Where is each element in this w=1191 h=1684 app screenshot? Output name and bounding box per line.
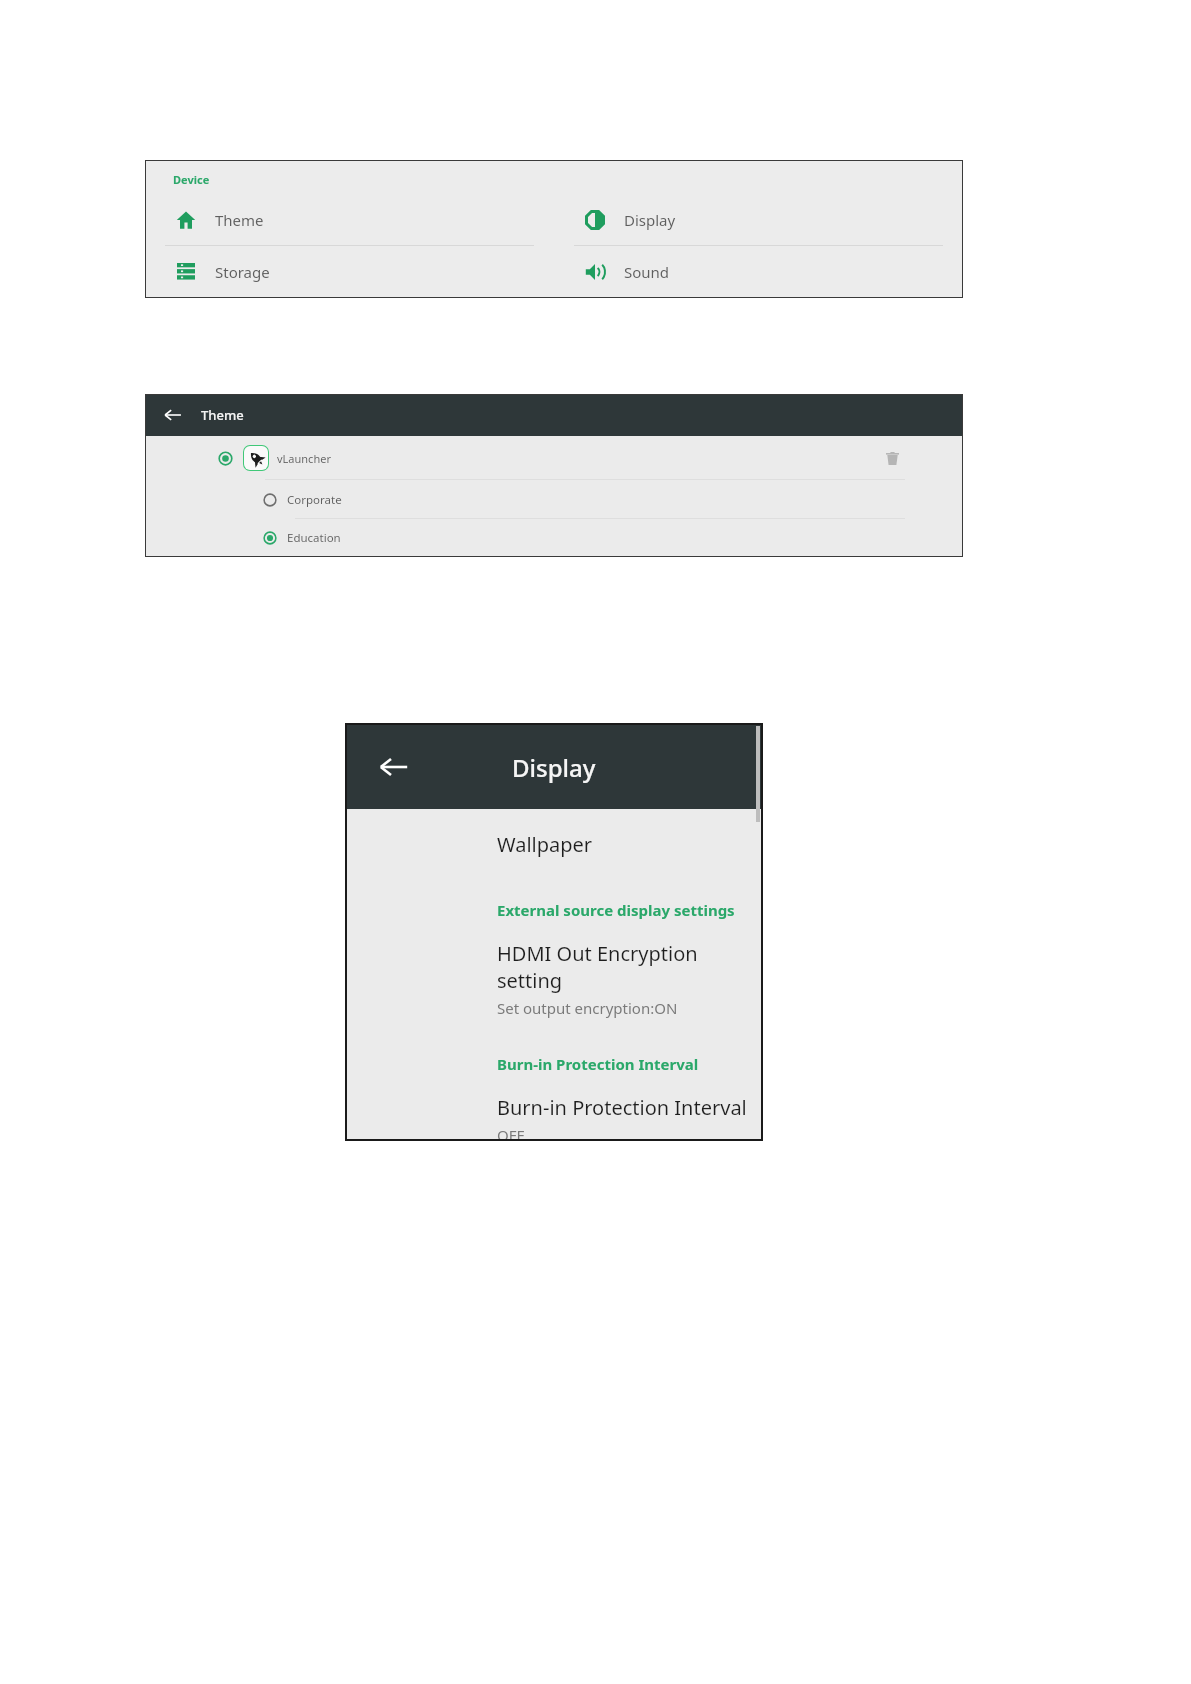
- button[interactable]: Wallpaper: [347, 831, 761, 858]
- staticText: Corporate: [287, 492, 342, 508]
- staticText: vLauncher: [277, 451, 331, 466]
- staticText: Burn-in Protection Interval: [497, 1054, 699, 1074]
- button[interactable]: Education: [145, 519, 963, 557]
- staticText: External source display settings: [497, 900, 735, 920]
- button[interactable]: Burn-in Protection Interval: [347, 1054, 761, 1074]
- button[interactable]: Storage: [145, 246, 554, 298]
- staticText: Storage: [215, 262, 270, 282]
- button[interactable]: Back: [371, 744, 417, 790]
- staticText: Burn-in Protection Interval: [497, 1094, 747, 1121]
- staticText: Theme: [215, 210, 264, 230]
- staticText: Display: [624, 210, 676, 230]
- staticText: Device: [173, 172, 210, 187]
- button[interactable]: vLauncher: [145, 436, 963, 480]
- button[interactable]: Back: [145, 394, 201, 436]
- button[interactable]: Theme: [145, 194, 554, 246]
- button[interactable]: Display: [554, 194, 963, 246]
- button[interactable]: Sound: [554, 246, 963, 298]
- button[interactable]: Delete theme: [879, 445, 905, 471]
- button[interactable]: Burn-in Protection Interval: [347, 1094, 761, 1139]
- staticText: Wallpaper: [497, 831, 593, 858]
- button[interactable]: Corporate: [145, 480, 963, 519]
- staticText: Theme: [201, 406, 244, 424]
- staticText: Set output encryption:ON: [497, 998, 678, 1018]
- staticText: OFF: [497, 1125, 525, 1139]
- button[interactable]: HDMI Out Encryption setting: [347, 940, 761, 1018]
- staticText: Education: [287, 530, 341, 546]
- staticText: HDMI Out Encryption setting: [497, 940, 761, 994]
- staticText: Display: [512, 751, 596, 784]
- button[interactable]: External source display settings: [347, 900, 761, 920]
- staticText: Sound: [624, 262, 670, 282]
